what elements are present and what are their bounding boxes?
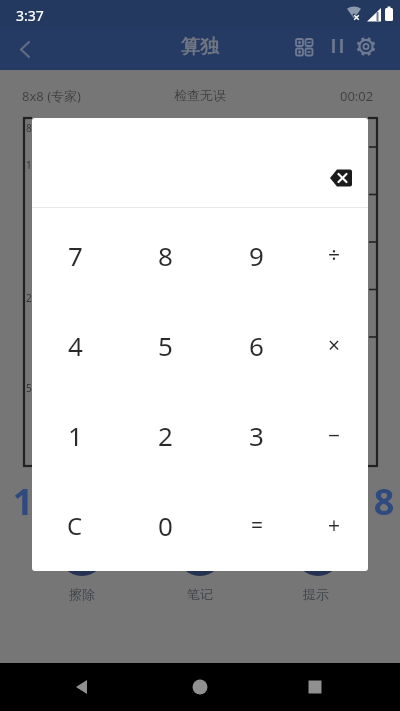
staticText: 1 bbox=[26, 158, 32, 172]
staticText: 2 bbox=[158, 418, 173, 453]
staticText: 提示 bbox=[290, 586, 342, 602]
staticText: 5 bbox=[158, 328, 173, 363]
button[interactable] bbox=[322, 31, 352, 61]
staticText: 2 bbox=[26, 291, 32, 305]
staticText: + bbox=[328, 511, 341, 540]
button[interactable] bbox=[288, 31, 320, 63]
staticText: 擦除 bbox=[56, 586, 108, 602]
staticText: 8x8 (专家) bbox=[22, 87, 81, 105]
staticText: × bbox=[328, 331, 341, 360]
button[interactable]: 7 bbox=[43, 223, 107, 287]
staticText: 9 bbox=[249, 238, 264, 273]
button[interactable]: 5 bbox=[133, 313, 197, 377]
button[interactable]: 1 bbox=[43, 403, 107, 467]
staticText: − bbox=[328, 421, 341, 450]
staticText: 6 bbox=[249, 328, 264, 363]
button[interactable]: 6 bbox=[224, 313, 288, 377]
button[interactable]: × bbox=[302, 313, 366, 377]
button[interactable]: 9 bbox=[224, 223, 288, 287]
button[interactable] bbox=[8, 32, 42, 66]
staticText: 8 bbox=[26, 121, 32, 135]
button[interactable]: C bbox=[43, 493, 107, 557]
button[interactable] bbox=[180, 667, 220, 707]
staticText: 7 bbox=[68, 238, 83, 273]
button[interactable] bbox=[295, 667, 335, 707]
button[interactable]: − bbox=[302, 403, 366, 467]
button[interactable]: 4 bbox=[43, 313, 107, 377]
button[interactable] bbox=[62, 667, 102, 707]
staticText: 0 bbox=[158, 508, 173, 543]
staticText: 5 bbox=[26, 381, 32, 395]
button[interactable] bbox=[319, 156, 363, 200]
button[interactable]: ÷ bbox=[302, 223, 366, 287]
button[interactable]: 2 bbox=[133, 403, 197, 467]
button[interactable] bbox=[350, 31, 382, 63]
staticText: 3 bbox=[249, 418, 264, 453]
staticText: 检查无误 bbox=[0, 87, 400, 103]
staticText: ÷ bbox=[328, 241, 341, 270]
button[interactable]: + bbox=[302, 493, 366, 557]
button[interactable]: 8 bbox=[133, 223, 197, 287]
staticText: 算独 bbox=[0, 35, 400, 59]
staticText: 3:37 bbox=[16, 6, 44, 25]
staticText: 00:02 bbox=[340, 87, 374, 105]
button[interactable]: 0 bbox=[133, 493, 197, 557]
staticText: C bbox=[67, 509, 83, 542]
staticText: 1 bbox=[68, 418, 83, 453]
button[interactable]: = bbox=[225, 493, 289, 557]
staticText: 8 bbox=[371, 477, 397, 526]
button[interactable]: 3 bbox=[224, 403, 288, 467]
staticText: 1 bbox=[10, 477, 36, 526]
staticText: 笔记 bbox=[174, 586, 226, 602]
staticText: = bbox=[251, 511, 264, 540]
staticText: 8 bbox=[158, 238, 173, 273]
staticText: 4 bbox=[68, 328, 83, 363]
